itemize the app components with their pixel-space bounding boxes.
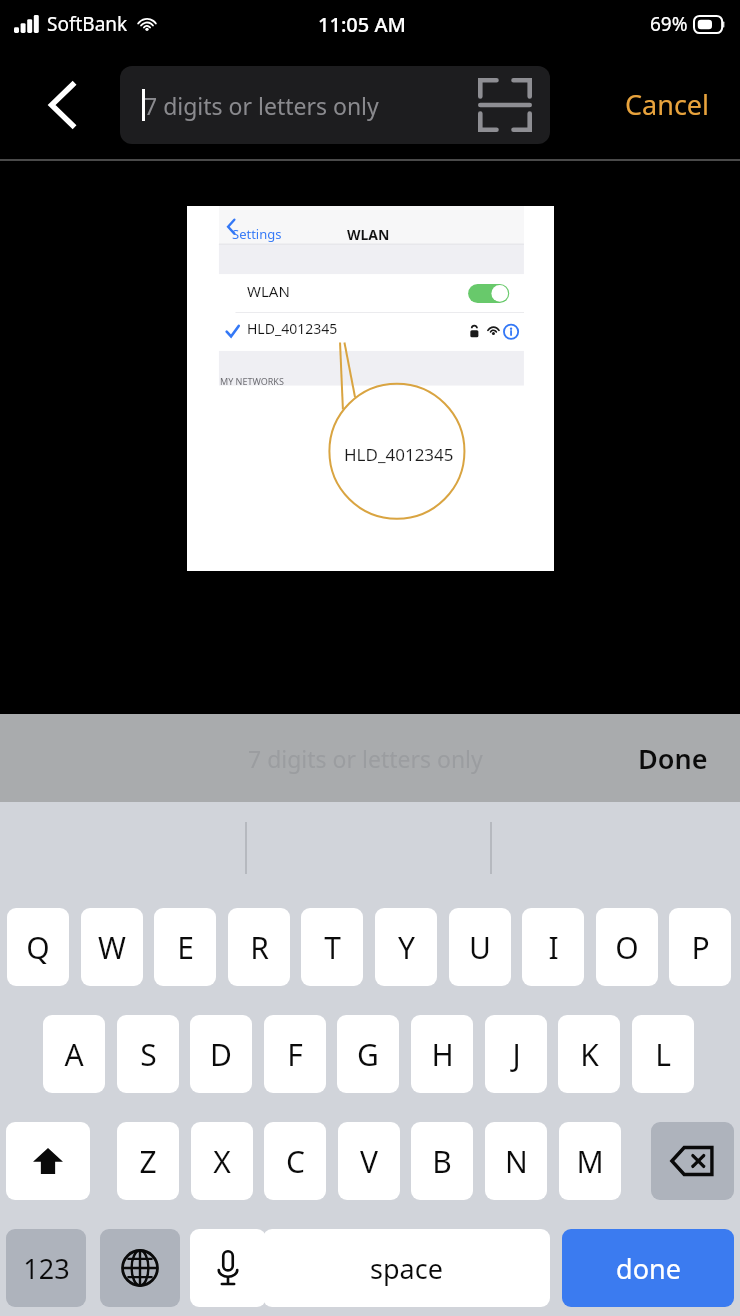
staticText: HLD_4012345 (247, 319, 338, 338)
staticText: SoftBank (47, 11, 128, 37)
button[interactable]: I (522, 908, 584, 986)
staticText: O (615, 927, 639, 968)
staticText: T (324, 927, 341, 968)
button[interactable]: V (338, 1122, 400, 1200)
button[interactable]: U (449, 908, 511, 986)
staticText: S (140, 1034, 157, 1075)
staticText: M (576, 1141, 604, 1182)
button[interactable]: Y (375, 908, 437, 986)
button[interactable]: 123 (6, 1229, 86, 1307)
button[interactable]: Scan code (474, 74, 536, 136)
staticText: Y (398, 927, 415, 968)
staticText: WLAN (247, 281, 290, 301)
button[interactable]: L (632, 1015, 694, 1093)
button[interactable]: A (43, 1015, 105, 1093)
staticText: Cancel (625, 86, 710, 123)
button[interactable]: Back (36, 78, 90, 132)
staticText: A (64, 1034, 84, 1075)
button[interactable]: G (337, 1015, 399, 1093)
button[interactable]: J (485, 1015, 547, 1093)
staticText: 123 (23, 1250, 70, 1287)
staticText: F (287, 1034, 303, 1075)
button[interactable]: N (485, 1122, 547, 1200)
staticText: X (213, 1141, 231, 1182)
button[interactable]: D (190, 1015, 252, 1093)
staticText: L (655, 1034, 671, 1075)
button[interactable]: R (228, 908, 290, 986)
button[interactable]: done (562, 1229, 734, 1307)
staticText: Settings (232, 225, 282, 243)
button[interactable]: P (669, 908, 731, 986)
staticText: MY NETWORKS (220, 375, 284, 387)
staticText: R (250, 927, 269, 968)
staticText: Z (139, 1141, 157, 1182)
button[interactable]: Shift (6, 1122, 90, 1200)
button[interactable]: H (411, 1015, 473, 1093)
button[interactable]: Z (117, 1122, 179, 1200)
staticText: H (431, 1034, 454, 1075)
button[interactable]: Dictate (190, 1229, 266, 1307)
button[interactable]: Q (7, 908, 69, 986)
staticText: Q (26, 927, 50, 968)
staticText: Done (638, 740, 708, 777)
button[interactable]: Done (638, 740, 708, 777)
staticText: 69% (650, 11, 688, 37)
staticText: D (210, 1034, 232, 1075)
button[interactable]: C (264, 1122, 326, 1200)
staticText: 11:05 AM (318, 11, 406, 38)
button[interactable]: F (264, 1015, 326, 1093)
staticText: HLD_4012345 (344, 443, 454, 466)
button[interactable]: Change keyboard language (100, 1229, 180, 1307)
staticText: I (548, 927, 559, 968)
staticText: J (512, 1034, 521, 1075)
staticText: U (469, 927, 491, 968)
staticText: K (580, 1034, 599, 1075)
staticText: WLAN (347, 225, 390, 244)
staticText: space (370, 1250, 443, 1287)
staticText: G (357, 1034, 379, 1075)
staticText: W (98, 927, 126, 968)
staticText: N (505, 1141, 528, 1182)
staticText: B (432, 1141, 452, 1182)
button[interactable]: Cancel (625, 86, 710, 123)
button[interactable]: O (596, 908, 658, 986)
button[interactable]: space (263, 1229, 550, 1307)
button[interactable]: E (154, 908, 216, 986)
staticText: 7 digits or letters only (144, 90, 379, 121)
button[interactable]: 7 digits or letters only (120, 66, 550, 144)
button[interactable]: S (117, 1015, 179, 1093)
staticText: E (177, 927, 194, 968)
button[interactable]: B (411, 1122, 473, 1200)
staticText: 7 digits or letters only (248, 743, 483, 774)
staticText: done (616, 1250, 681, 1287)
button[interactable]: K (558, 1015, 620, 1093)
button[interactable]: Backspace (651, 1122, 734, 1200)
button[interactable]: X (191, 1122, 253, 1200)
staticText: C (286, 1141, 305, 1182)
button[interactable]: W (81, 908, 143, 986)
staticText: P (691, 927, 710, 968)
staticText: V (360, 1141, 378, 1182)
button[interactable]: T (301, 908, 363, 986)
button[interactable]: M (559, 1122, 621, 1200)
